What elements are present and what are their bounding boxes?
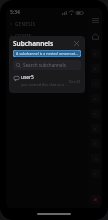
button[interactable]: Search subchannels — [13, 60, 81, 70]
staticText: user5 — [21, 74, 34, 81]
button[interactable]: Close — [72, 39, 81, 48]
staticText: GENESIS — [15, 21, 36, 27]
button[interactable]: A subchannel is a nested conversation in… — [13, 50, 81, 57]
staticText: you created this chat as a child of b… — [21, 82, 68, 87]
staticText: COMM — [15, 33, 31, 39]
button[interactable]: Home — [89, 30, 101, 42]
staticText: Search subchannels — [23, 62, 66, 68]
staticText: p — [94, 51, 97, 56]
staticText: A subchannel is a nested conversation in… — [16, 51, 78, 56]
staticText: Subchannels — [13, 39, 54, 48]
button[interactable] — [91, 195, 100, 204]
staticText: k — [94, 141, 97, 146]
button[interactable]: user5 — [13, 73, 81, 88]
staticText: n — [94, 111, 97, 116]
staticText: s — [95, 156, 97, 161]
button[interactable]: COMM — [6, 32, 88, 40]
button[interactable]: Menu — [89, 14, 101, 26]
staticText: b — [94, 66, 97, 71]
button[interactable]: GENESIS — [6, 20, 88, 28]
staticText: 5:34 — [10, 9, 20, 16]
staticText: L — [94, 171, 97, 176]
staticText: o — [94, 96, 97, 101]
staticText: Dec 23 — [69, 79, 81, 84]
staticText: a — [94, 126, 97, 131]
